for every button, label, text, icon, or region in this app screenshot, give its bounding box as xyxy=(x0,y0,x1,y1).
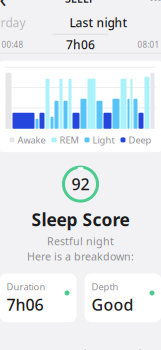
staticText: 7h06 xyxy=(66,37,95,53)
staticText: Light xyxy=(92,134,114,146)
staticText: Last night xyxy=(69,15,127,31)
staticText: 00:48 xyxy=(1,39,23,50)
staticText: REM xyxy=(59,134,78,146)
staticText: Week xyxy=(58,346,89,350)
staticText: Depth xyxy=(91,280,118,293)
staticText: terday xyxy=(0,15,25,31)
staticText: 92 xyxy=(71,173,89,195)
staticText: Deep xyxy=(128,134,151,146)
button[interactable]: Back xyxy=(0,0,27,11)
staticText: Good xyxy=(91,294,133,315)
staticText: ‹ xyxy=(0,0,6,14)
staticText: Restful night xyxy=(47,234,114,248)
staticText: 08:01 xyxy=(137,39,159,50)
staticText: Duration xyxy=(6,280,45,293)
button[interactable]: Depth xyxy=(84,273,161,322)
staticText: Sleep Score xyxy=(31,208,129,231)
staticText: Month xyxy=(109,346,145,350)
staticText: Here is a breakdown: xyxy=(27,249,134,263)
staticText: 7h06 xyxy=(6,294,43,315)
staticText: SLEEP xyxy=(65,0,96,6)
button[interactable]: More options xyxy=(133,0,161,11)
button[interactable]: Duration xyxy=(0,273,76,322)
staticText: Awake xyxy=(17,134,45,146)
staticText: ••• xyxy=(149,0,161,6)
